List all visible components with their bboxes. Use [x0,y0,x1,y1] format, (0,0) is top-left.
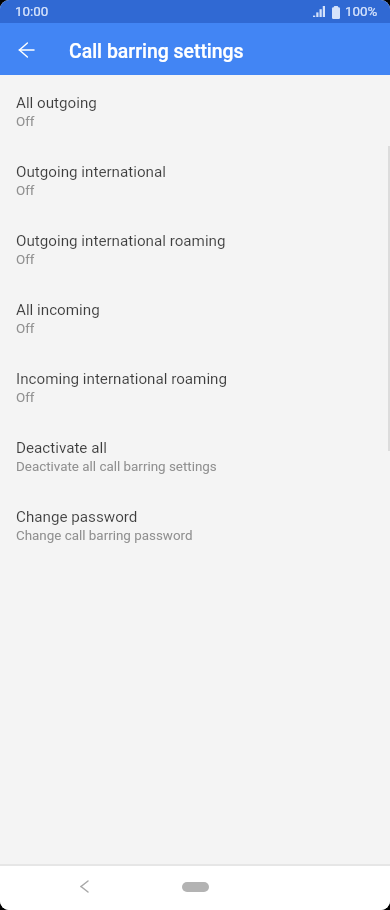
staticText: Change call barring password [16,528,193,544]
staticText: Off [16,183,35,199]
staticText: Outgoing international roaming [16,232,226,250]
staticText: 10:00 [15,4,49,20]
staticText: Call barring settings [69,40,244,63]
button[interactable]: Outgoing international [0,144,390,213]
staticText: Deactivate all call barring settings [16,459,217,475]
button[interactable]: Outgoing international roaming [0,213,390,282]
button[interactable]: All outgoing [0,75,390,144]
button[interactable]: Change password [0,489,390,558]
staticText: Outgoing international [16,163,166,181]
staticText: Off [16,390,35,406]
staticText: Deactivate all [16,439,107,457]
staticText: Change password [16,508,138,526]
button[interactable]: Back [62,866,106,910]
staticText: Off [16,252,35,268]
button[interactable]: Home [165,875,225,901]
button[interactable]: Back [8,31,45,68]
staticText: 100% [345,4,378,20]
staticText: Off [16,321,35,337]
button[interactable]: Deactivate all [0,420,390,489]
button[interactable]: All incoming [0,282,390,351]
staticText: All incoming [16,301,100,319]
staticText: Off [16,114,35,130]
button[interactable]: Incoming international roaming [0,351,390,420]
staticText: All outgoing [16,94,97,112]
staticText: Incoming international roaming [16,370,228,388]
